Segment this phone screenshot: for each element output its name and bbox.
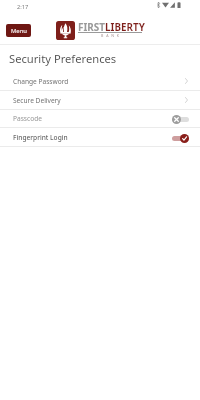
staticText: FIRST <box>78 20 105 33</box>
button[interactable]: Menu <box>6 24 31 37</box>
button[interactable]: Passcode <box>0 110 200 127</box>
button[interactable]: Fingerprint Login <box>0 128 200 146</box>
staticText: Security Preferences <box>9 51 117 66</box>
staticText: B A N K <box>78 33 142 38</box>
staticText: LIBERTY <box>105 20 145 33</box>
button[interactable]: Secure Delivery <box>0 91 200 109</box>
button[interactable]: Toggle <box>172 115 189 124</box>
button[interactable]: Toggle <box>172 134 189 143</box>
staticText: 2:17 <box>17 3 29 11</box>
staticText: Secure Delivery <box>13 96 61 105</box>
staticText: Change Password <box>13 77 69 86</box>
staticText: Menu <box>11 27 27 35</box>
staticText: Fingerprint Login <box>13 133 68 142</box>
staticText: Passcode <box>13 114 42 123</box>
button[interactable]: Change Password <box>0 72 200 90</box>
